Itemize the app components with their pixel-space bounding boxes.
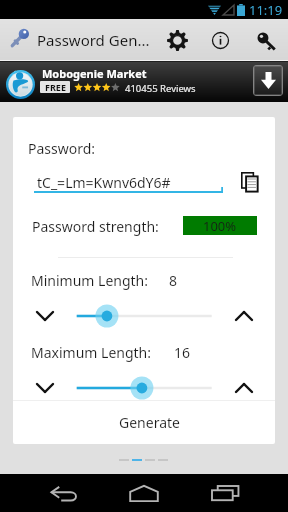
staticText: Password: (28, 139, 96, 158)
button[interactable]: Decrease (29, 377, 61, 399)
staticText: 8 (169, 271, 178, 290)
button[interactable]: New password (244, 19, 287, 62)
button[interactable]: Download (253, 65, 283, 96)
staticText: 16 (174, 343, 191, 362)
button[interactable]: Mobogenie Market (0, 62, 288, 102)
staticText: Minimum Length: (31, 271, 148, 290)
button[interactable]: About (200, 19, 241, 62)
button[interactable]: Decrease (29, 305, 61, 327)
staticText: Generate (119, 413, 180, 432)
staticText: Maximum Length: (31, 343, 151, 362)
staticText: 11:19 (249, 1, 283, 19)
staticText: Mobogenie Market (42, 66, 147, 81)
staticText: 100% (203, 217, 237, 235)
button[interactable]: Increase (228, 305, 260, 327)
staticText: Password strength: (32, 217, 159, 236)
button[interactable]: Copy password (238, 170, 260, 194)
staticText: FREE (45, 81, 66, 93)
button[interactable]: Back (36, 474, 92, 512)
staticText: Password Gen... (37, 30, 150, 50)
button[interactable]: Generate (13, 401, 275, 443)
button[interactable]: Settings (158, 19, 196, 62)
button[interactable]: Recents (197, 474, 253, 512)
button[interactable]: Password Gen... (0, 19, 155, 62)
staticText: 410455 Reviews (125, 82, 196, 95)
staticText: tC_=Lm=Kwnv6dY6# (37, 173, 171, 192)
button[interactable]: Increase (228, 377, 260, 399)
button[interactable]: Home (116, 474, 172, 512)
